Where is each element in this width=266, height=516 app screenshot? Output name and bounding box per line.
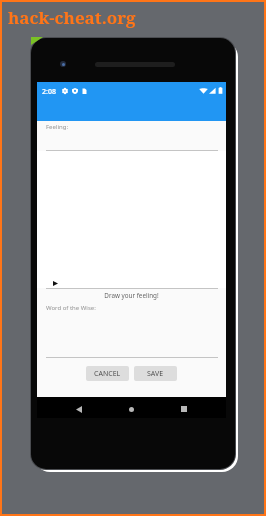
staticText: Feeling: [46, 123, 68, 131]
staticText: Word of the Wise: [46, 304, 96, 312]
button[interactable]: Recent apps [174, 399, 194, 419]
staticText: hack-cheat.org [8, 6, 136, 29]
staticText: CANCEL [94, 369, 121, 379]
staticText: SAVE [147, 369, 164, 379]
button[interactable]: Back [69, 399, 89, 419]
staticText: Draw your feeling! [37, 291, 226, 300]
button[interactable]: Home [121, 399, 141, 419]
button[interactable]: SAVE [134, 366, 177, 381]
button[interactable]: CANCEL [86, 366, 129, 381]
staticText: 2:08 [42, 87, 56, 97]
